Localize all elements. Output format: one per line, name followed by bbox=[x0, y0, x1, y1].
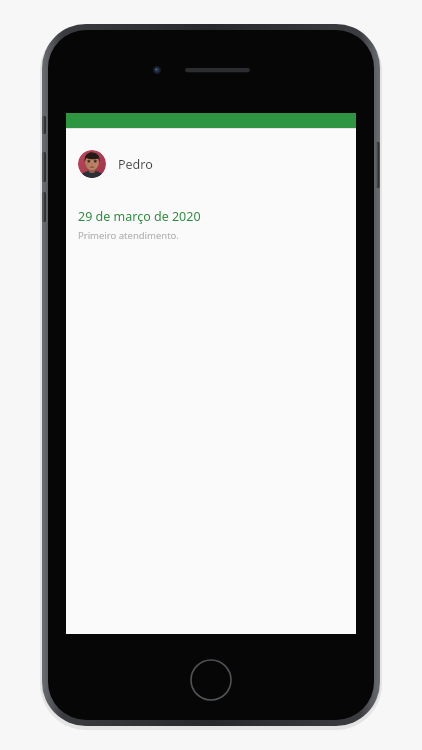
staticText: Pedro bbox=[118, 156, 153, 173]
button[interactable]: 29 de março de 2020 bbox=[66, 206, 356, 248]
other: Foto de Pedro bbox=[78, 150, 106, 178]
staticText: 29 de março de 2020 bbox=[78, 208, 201, 225]
button[interactable]: Foto de Pedro bbox=[66, 129, 356, 184]
staticText: Primeiro atendimento. bbox=[78, 229, 179, 242]
